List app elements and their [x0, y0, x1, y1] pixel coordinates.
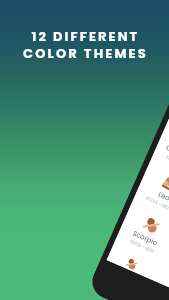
- staticText: 07/23 - 08/22: [145, 195, 169, 213]
- staticText: Capricorn: [164, 143, 169, 166]
- staticText: 12 DIFFERENT: [1, 27, 169, 45]
- staticText: COLOR THEMES: [1, 44, 169, 62]
- button[interactable]: Cancer: [107, 239, 164, 281]
- staticText: Scorpio: [131, 228, 159, 248]
- button[interactable]: Scorpio: [116, 197, 169, 260]
- staticText: Leo: [157, 190, 169, 204]
- button[interactable]: Virgo: [155, 260, 169, 300]
- button[interactable]: Capricorn: [153, 113, 169, 176]
- staticText: 10/23 - 11/21: [129, 238, 155, 254]
- button[interactable]: Leo: [135, 155, 169, 218]
- staticText: 12/22 - 01/19: [165, 153, 169, 170]
